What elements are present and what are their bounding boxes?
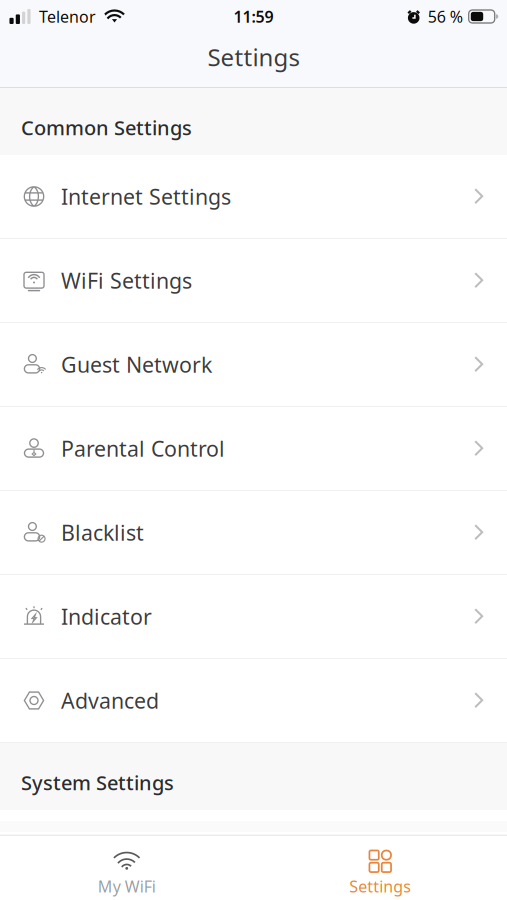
- staticText: Parental Control: [61, 434, 225, 463]
- staticText: 11:59: [233, 6, 273, 27]
- button[interactable]: Internet Settings: [0, 155, 507, 239]
- button[interactable]: Indicator: [0, 575, 507, 659]
- staticText: Settings: [207, 41, 299, 73]
- button[interactable]: Blacklist: [0, 491, 507, 575]
- staticText: My WiFi: [98, 876, 156, 897]
- button[interactable]: Guest Network: [0, 323, 507, 407]
- button[interactable]: WiFi Settings: [0, 239, 507, 323]
- staticText: System Settings: [21, 769, 174, 796]
- staticText: Internet Settings: [61, 182, 231, 211]
- button[interactable]: My WiFi: [0, 850, 253, 897]
- staticText: Settings: [349, 876, 411, 897]
- button[interactable]: Settings: [253, 850, 507, 897]
- staticText: 56 %: [428, 6, 463, 27]
- staticText: Guest Network: [61, 350, 212, 379]
- staticText: Advanced: [61, 686, 159, 715]
- staticText: Blacklist: [61, 518, 144, 547]
- staticText: Telenor: [39, 6, 96, 27]
- staticText: WiFi Settings: [61, 266, 192, 295]
- button[interactable]: Parental Control: [0, 407, 507, 491]
- staticText: Indicator: [61, 602, 152, 631]
- button[interactable]: Advanced: [0, 659, 507, 743]
- staticText: Common Settings: [21, 114, 192, 141]
